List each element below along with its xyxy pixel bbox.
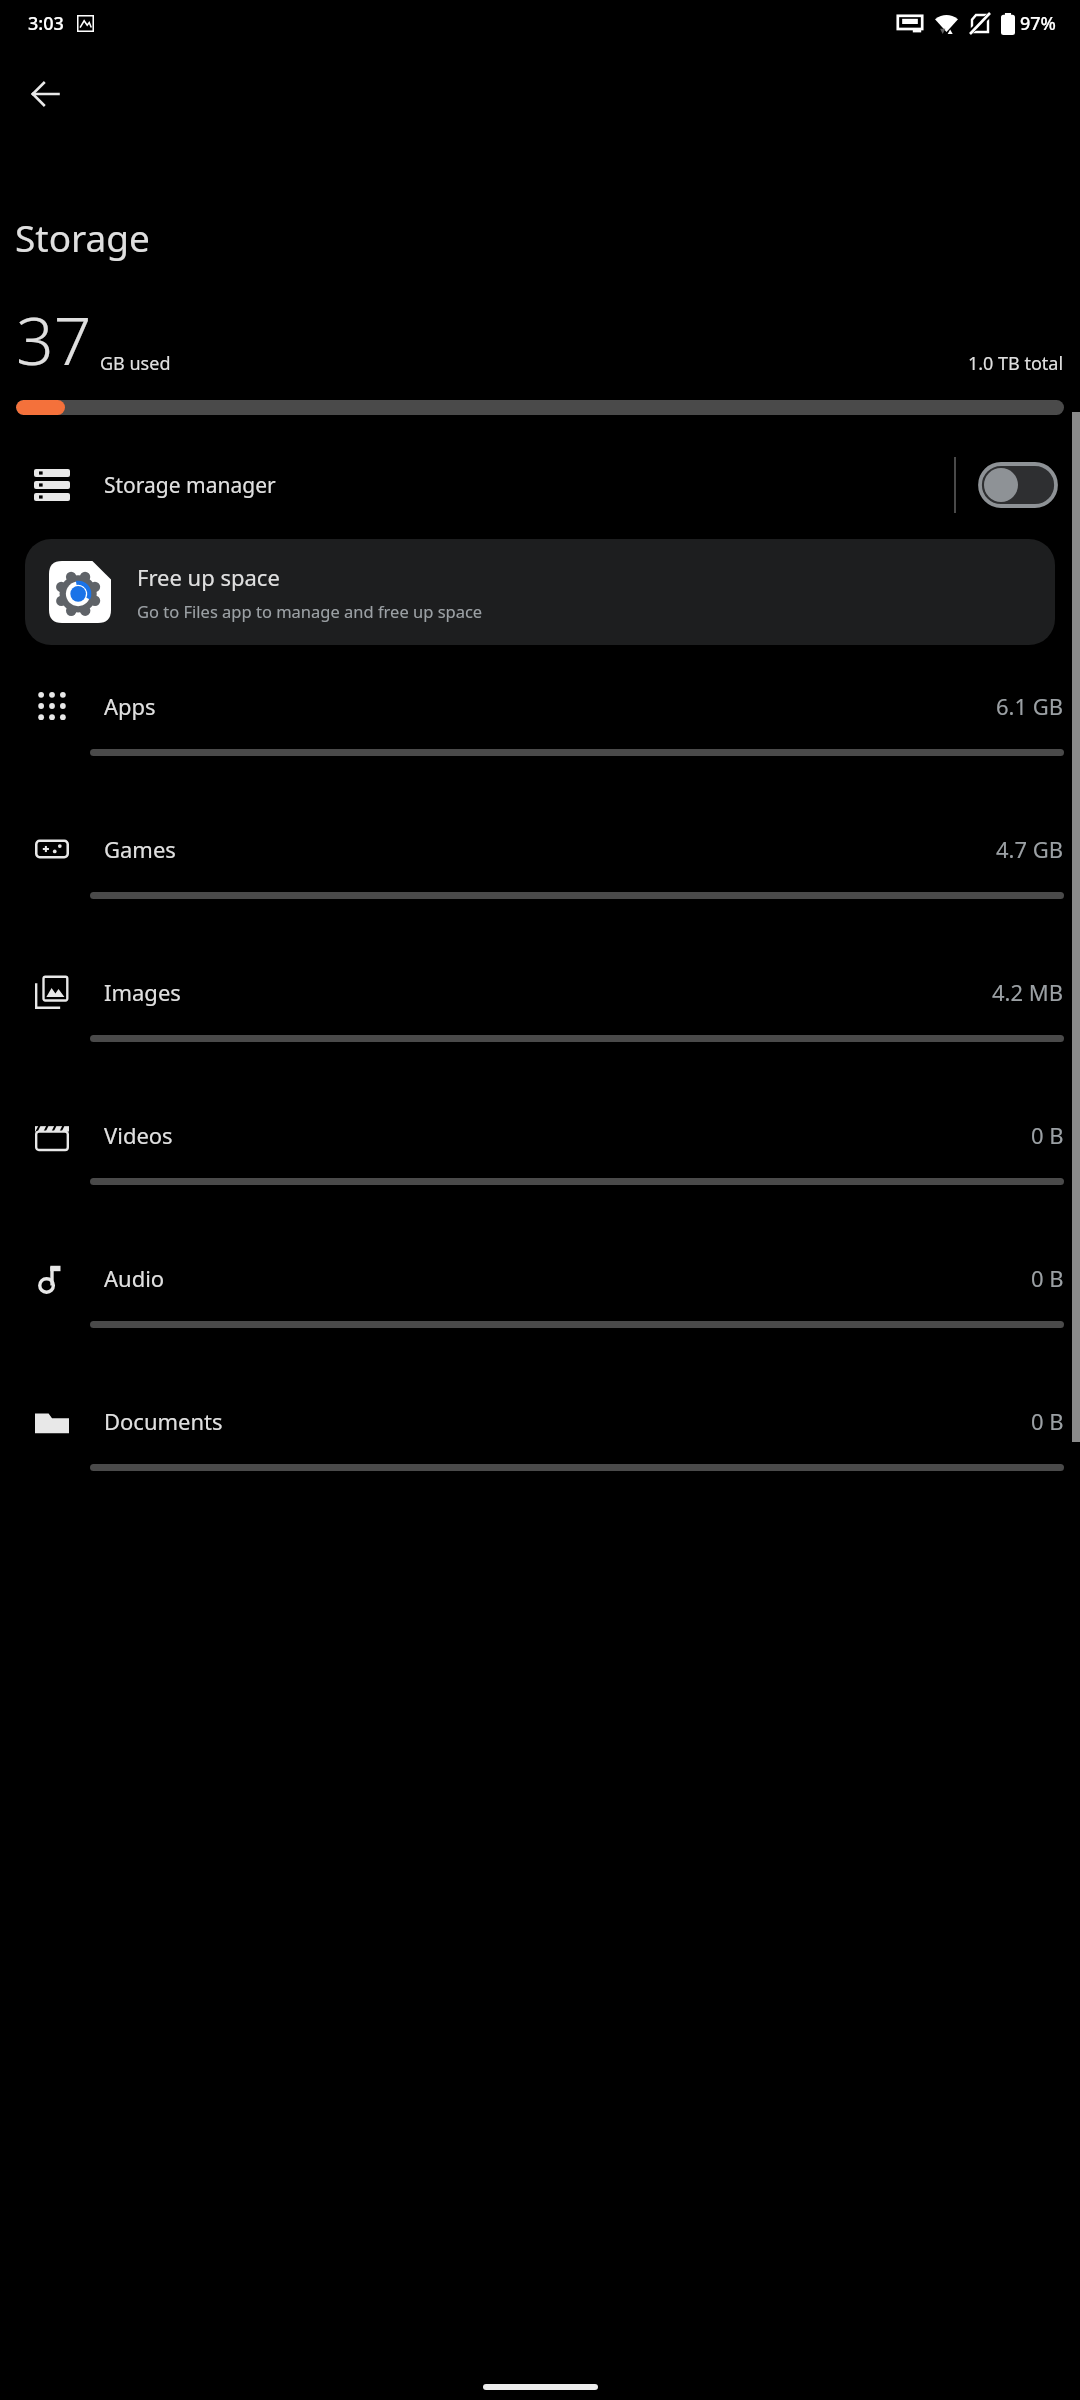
- button[interactable]: Apps: [0, 663, 1080, 806]
- staticText: Documents: [104, 1406, 1031, 1436]
- staticText: Audio: [104, 1263, 1031, 1293]
- button[interactable]: Videos: [0, 1092, 1080, 1235]
- button[interactable]: Free up space: [25, 539, 1055, 645]
- staticText: 6.1 GB: [996, 691, 1064, 721]
- staticText: GB used: [100, 351, 171, 376]
- staticText: Videos: [104, 1120, 1031, 1150]
- staticText: Go to Files app to manage and free up sp…: [137, 600, 483, 622]
- button[interactable]: Storage manager toggle: [956, 435, 1080, 535]
- button[interactable]: Images: [0, 949, 1080, 1092]
- staticText: 1.0 TB total: [968, 351, 1064, 376]
- button[interactable]: Games: [0, 806, 1080, 949]
- staticText: 97%: [1020, 11, 1056, 36]
- button[interactable]: Audio: [0, 1235, 1080, 1378]
- staticText: 0 B: [1031, 1120, 1064, 1150]
- staticText: Storage manager: [104, 471, 954, 500]
- staticText: Storage: [15, 212, 150, 262]
- staticText: Games: [104, 834, 996, 864]
- staticText: 0 B: [1031, 1263, 1064, 1293]
- staticText: 0 B: [1031, 1406, 1064, 1436]
- staticText: 3:03: [28, 11, 64, 36]
- staticText: Free up space: [137, 562, 280, 592]
- staticText: 4.2 MB: [992, 977, 1064, 1007]
- button[interactable]: Storage manager: [0, 435, 1080, 535]
- staticText: 37: [16, 294, 92, 384]
- staticText: Images: [104, 977, 992, 1007]
- staticText: 4.7 GB: [996, 834, 1064, 864]
- staticText: Apps: [104, 691, 996, 721]
- button[interactable]: Back: [16, 64, 76, 124]
- button[interactable]: Documents: [0, 1378, 1080, 1521]
